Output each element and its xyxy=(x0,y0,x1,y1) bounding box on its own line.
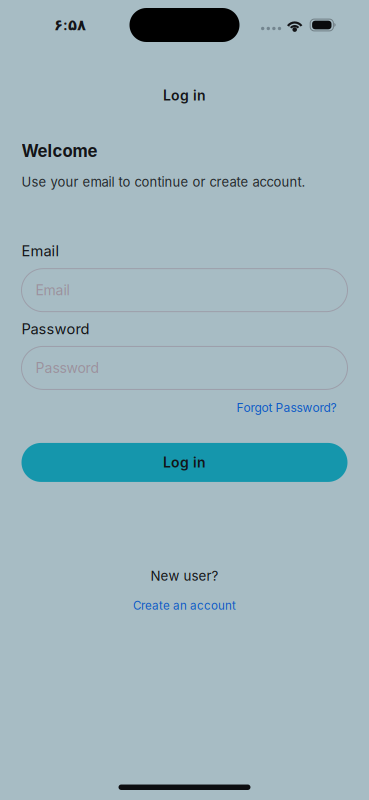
staticText: Password xyxy=(21,320,89,338)
button[interactable]: Create an account xyxy=(133,598,236,612)
staticText: Use your email to continue or create acc… xyxy=(21,174,305,190)
staticText: Forgot Password? xyxy=(236,400,336,415)
staticText: Log in xyxy=(163,87,206,104)
staticText: ۶:۵۸ xyxy=(54,16,86,34)
staticText: Password xyxy=(35,359,99,376)
button[interactable]: Password xyxy=(21,346,347,389)
staticText: Email xyxy=(21,242,59,260)
staticText: Create an account xyxy=(133,598,236,612)
button[interactable]: Forgot Password? xyxy=(236,400,336,415)
button[interactable]: Email xyxy=(21,269,347,312)
staticText: Welcome xyxy=(21,141,97,161)
staticText: Log in xyxy=(163,454,206,471)
staticText: New user? xyxy=(150,568,218,584)
staticText: Email xyxy=(35,282,69,299)
button[interactable]: Log in xyxy=(21,443,347,482)
